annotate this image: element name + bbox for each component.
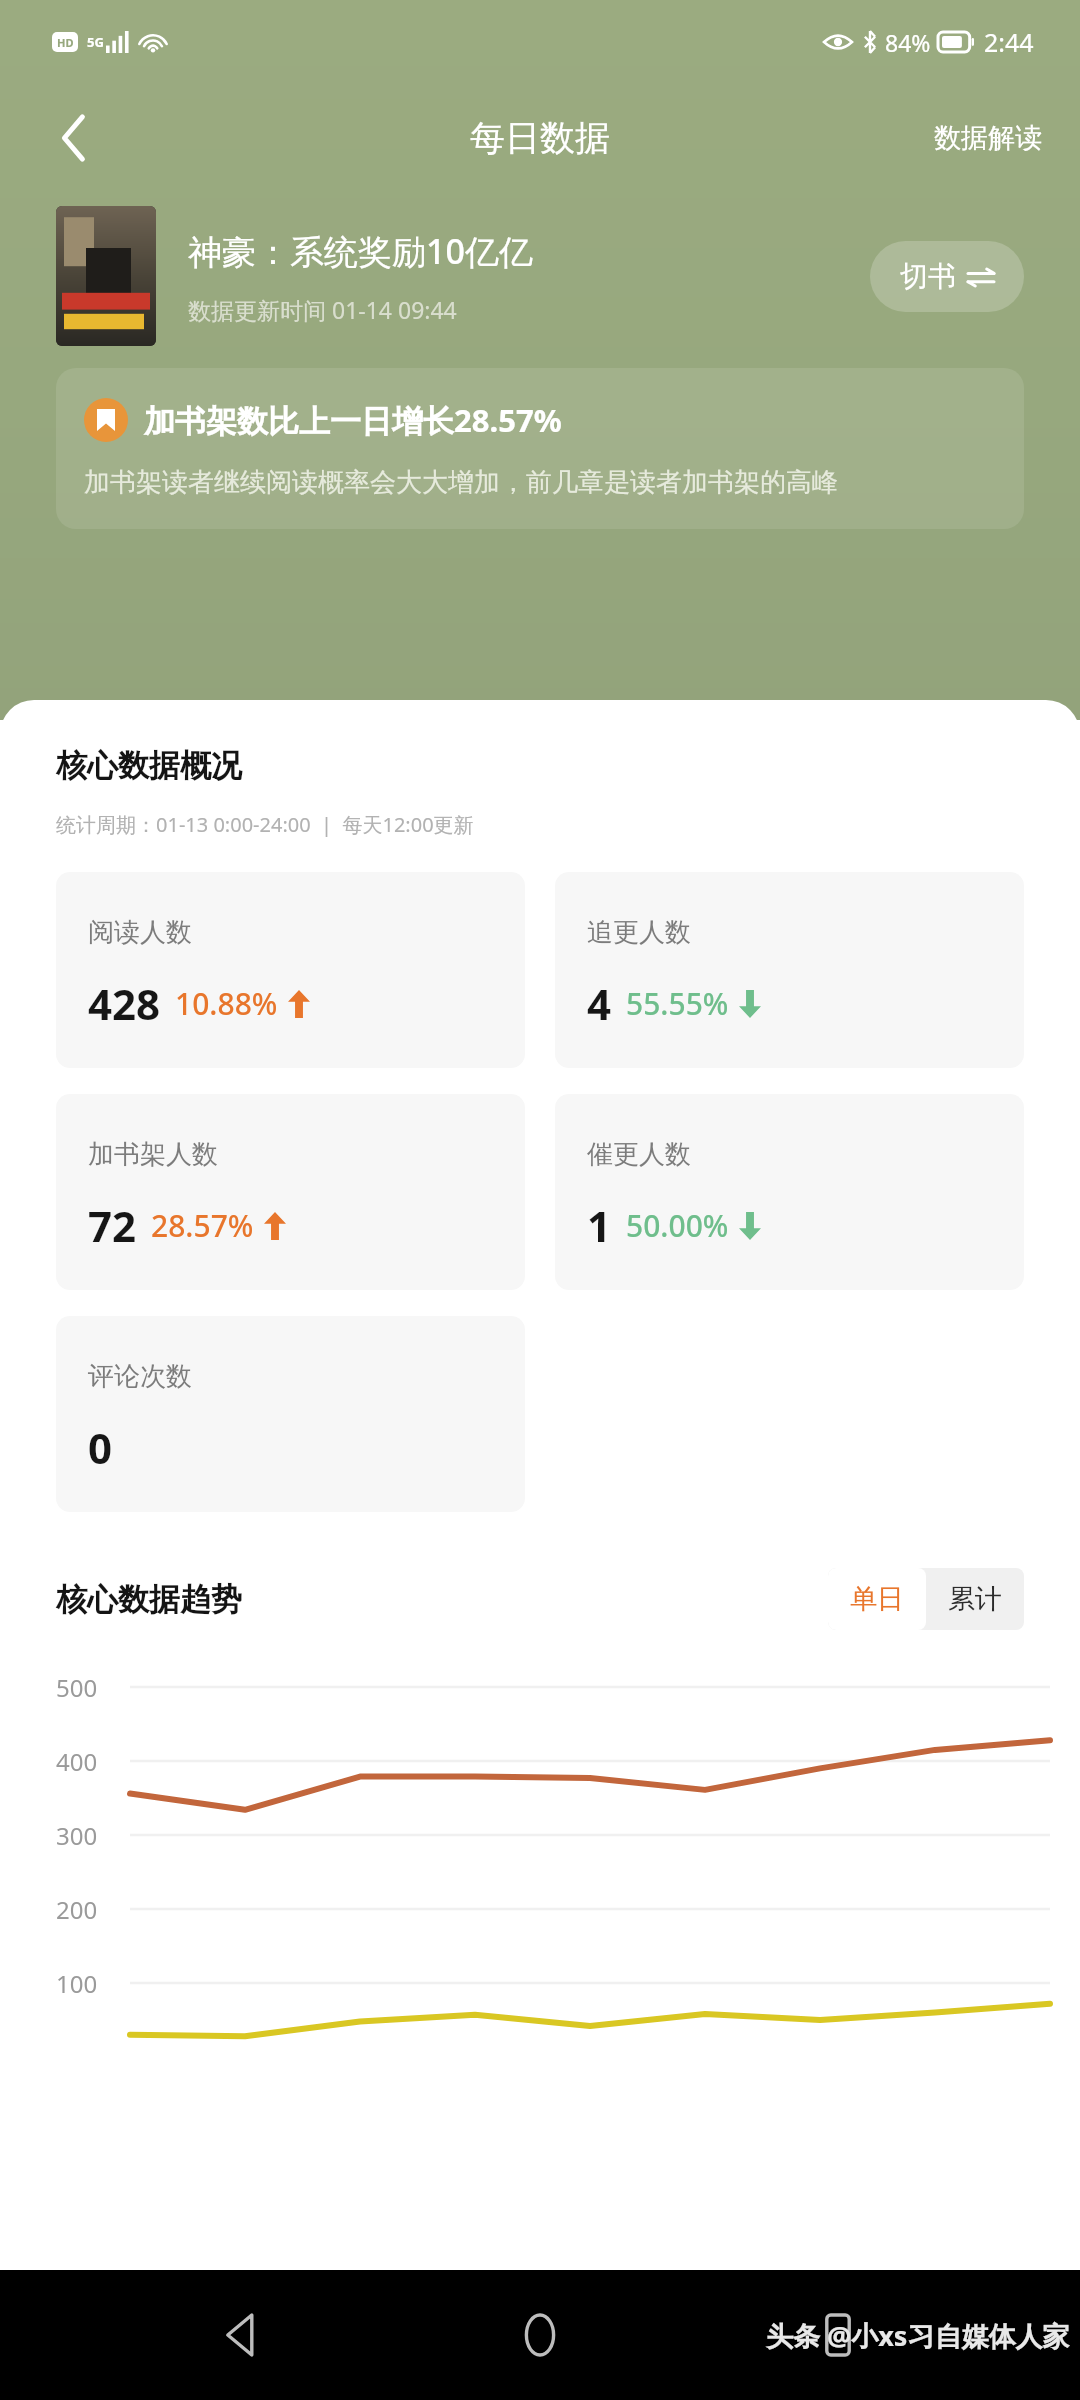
staticText: 单日 <box>850 1582 904 1616</box>
staticText: 28.57% <box>151 1205 254 1246</box>
staticText: 72 <box>88 1197 137 1254</box>
button[interactable]: 追更人数 <box>555 872 1024 1068</box>
staticText: 每日数据 <box>470 116 610 160</box>
staticText: 数据解读 <box>934 121 1042 155</box>
staticText: 加书架读者继续阅读概率会大大增加，前几章是读者加书架的高峰 <box>84 466 838 499</box>
staticText: 1 <box>587 1197 612 1254</box>
staticText: 400 <box>56 1745 98 1778</box>
staticText: 累计 <box>948 1582 1002 1616</box>
button[interactable]: 切书 <box>870 241 1024 312</box>
staticText: 428 <box>88 975 161 1032</box>
staticText: 催更人数 <box>587 1138 691 1171</box>
button[interactable]: Recents <box>783 2280 893 2390</box>
button[interactable]: Home <box>485 2280 595 2390</box>
button[interactable]: 评论次数 <box>56 1316 525 1512</box>
staticText: 300 <box>56 1819 98 1852</box>
staticText: 200 <box>56 1893 98 1926</box>
button[interactable]: 阅读人数 <box>56 872 525 1068</box>
staticText: 阅读人数 <box>88 916 192 949</box>
button[interactable]: Back <box>188 2280 298 2390</box>
button[interactable]: 加书架数比上一日增长28.57% <box>56 368 1024 529</box>
button[interactable]: 单日 <box>828 1568 926 1630</box>
button[interactable] <box>56 206 156 346</box>
staticText: 55.55% <box>626 983 729 1024</box>
staticText: 0 <box>88 1419 113 1476</box>
button[interactable]: 催更人数 <box>555 1094 1024 1290</box>
staticText: 统计周期：01-13 0:00-24:00 | 每天12:00更新 <box>56 811 474 838</box>
button[interactable]: 加书架人数 <box>56 1094 525 1290</box>
staticText: 加书架数比上一日增长28.57% <box>144 399 562 441</box>
staticText: 84% <box>885 27 931 58</box>
staticText: 10.88% <box>175 983 278 1024</box>
staticText: 评论次数 <box>88 1360 192 1393</box>
staticText: 头条 @小xs习自媒体人家 <box>766 2317 1070 2354</box>
staticText: 核心数据概况 <box>56 746 242 785</box>
staticText: 追更人数 <box>587 916 691 949</box>
staticText: 500 <box>56 1671 98 1704</box>
staticText: 100 <box>56 1967 98 2000</box>
staticText: 切书 <box>900 259 956 294</box>
staticText: HD <box>57 35 74 50</box>
button[interactable]: Back <box>38 102 110 174</box>
staticText: 50.00% <box>626 1205 729 1246</box>
button[interactable]: 累计 <box>926 1568 1024 1630</box>
staticText: 2:44 <box>984 25 1034 59</box>
staticText: 加书架人数 <box>88 1138 218 1171</box>
staticText: 4 <box>587 975 612 1032</box>
staticText: 核心数据趋势 <box>56 1580 242 1619</box>
button[interactable]: 数据解读 <box>896 105 1080 171</box>
staticText: 神豪：系统奖励10亿亿 <box>188 228 533 274</box>
staticText: 数据更新时间 01-14 09:44 <box>188 294 457 325</box>
staticText: 5G <box>87 33 104 51</box>
